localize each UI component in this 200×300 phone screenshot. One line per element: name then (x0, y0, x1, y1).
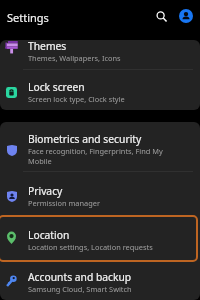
button[interactable]: Lock screen (0, 70, 200, 110)
staticText: Face recognition, Fingerprints, Find My (28, 146, 163, 156)
button[interactable]: Biometrics and security (0, 122, 200, 171)
staticText: Samsung Cloud, Smart Switch (28, 284, 132, 294)
button[interactable]: Themes (0, 40, 200, 69)
staticText: Lock screen (28, 80, 85, 94)
button[interactable]: Privacy (0, 172, 200, 216)
staticText: Location settings, Location requests (28, 242, 153, 252)
staticText: Accounts and backup (28, 270, 132, 284)
staticText: Settings (7, 10, 49, 25)
staticText: Permission manager (28, 198, 100, 208)
button[interactable]: Account (175, 5, 197, 27)
button[interactable]: Search (150, 5, 172, 27)
button[interactable]: Location (0, 216, 200, 262)
staticText: Themes, Wallpapers, Icons (28, 53, 121, 63)
staticText: Mobile (28, 156, 52, 166)
staticText: Biometrics and security (28, 132, 142, 146)
staticText: Themes (28, 40, 67, 53)
staticText: Location (28, 228, 70, 242)
button[interactable]: Accounts and backup (0, 262, 200, 300)
staticText: Screen lock type, Clock style (28, 94, 125, 104)
staticText: Privacy (28, 184, 63, 198)
